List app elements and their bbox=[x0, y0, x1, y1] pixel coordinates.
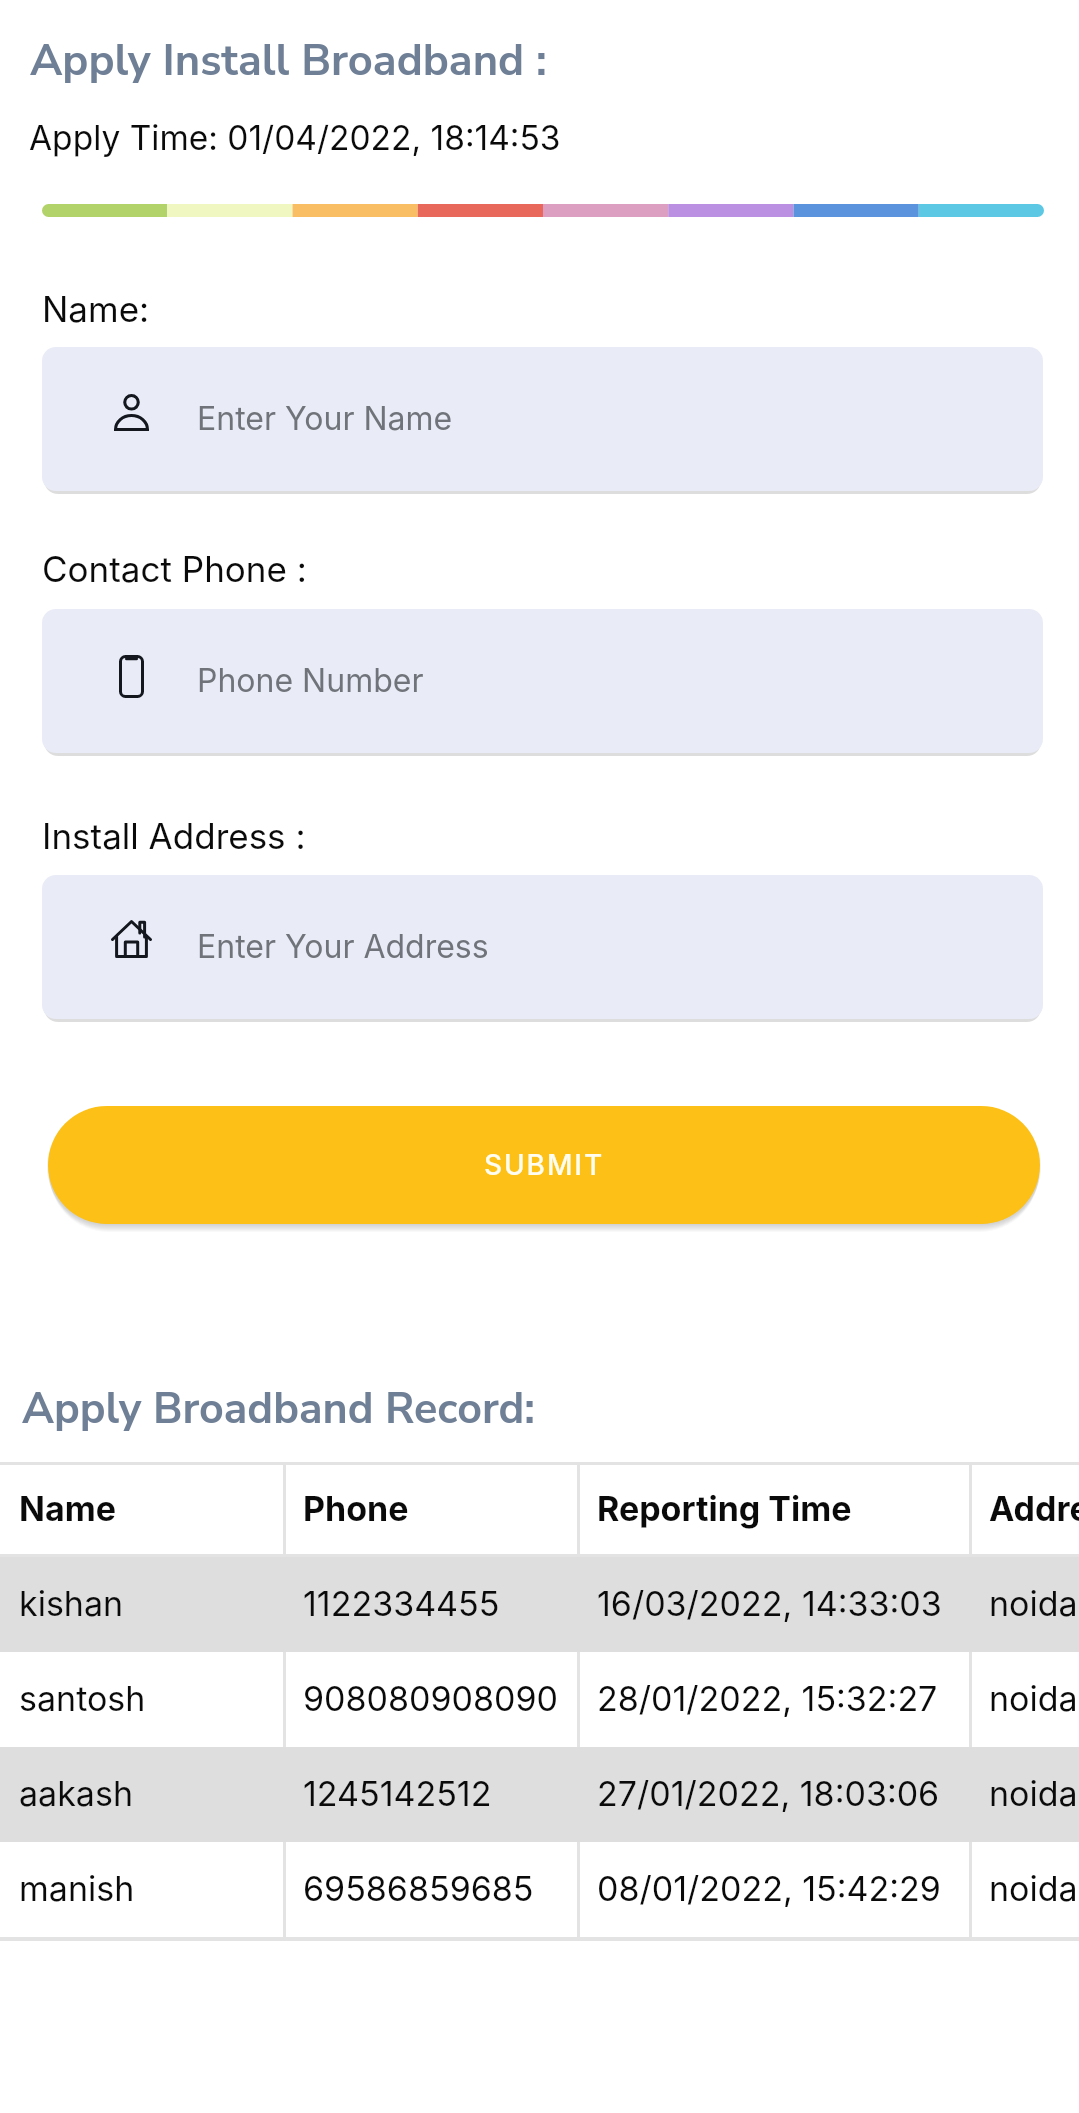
staticText: 1122334455 bbox=[303, 1583, 500, 1624]
staticText: Phone Number bbox=[197, 661, 424, 700]
button[interactable]: Name input field bbox=[42, 347, 1043, 491]
staticText: 27/01/2022, 18:03:06 bbox=[597, 1773, 940, 1814]
staticText: Name: bbox=[42, 288, 150, 330]
button[interactable]: SUBMIT bbox=[48, 1106, 1040, 1224]
staticText: Enter Your Name bbox=[197, 399, 453, 438]
staticText: aakash bbox=[19, 1773, 133, 1814]
staticText: 908080908090 bbox=[303, 1678, 559, 1719]
staticText: kishan bbox=[19, 1583, 124, 1624]
button[interactable]: Phone number input field bbox=[42, 609, 1043, 753]
staticText: noida bbox=[989, 1868, 1078, 1909]
staticText: Contact Phone : bbox=[42, 548, 307, 590]
staticText: Address bbox=[989, 1488, 1079, 1529]
staticText: noida bbox=[989, 1773, 1078, 1814]
staticText: santosh bbox=[19, 1678, 146, 1719]
staticText: 08/01/2022, 15:42:29 bbox=[597, 1868, 941, 1909]
staticText: 16/03/2022, 14:33:03 bbox=[597, 1583, 942, 1624]
staticText: SUBMIT bbox=[484, 1148, 605, 1182]
staticText: Reporting Time bbox=[597, 1488, 852, 1529]
staticText: manish bbox=[19, 1868, 135, 1909]
button[interactable] bbox=[0, 1747, 1079, 1842]
staticText: Phone bbox=[303, 1488, 409, 1529]
button[interactable] bbox=[0, 1842, 1079, 1937]
staticText: 69586859685 bbox=[303, 1868, 534, 1909]
staticText: 1245142512 bbox=[303, 1773, 492, 1814]
staticText: Apply Time: 01/04/2022, 18:14:53 bbox=[29, 118, 561, 159]
staticText: Apply Broadband Record: bbox=[22, 1380, 535, 1439]
staticText: Install Address : bbox=[42, 815, 306, 857]
staticText: 28/01/2022, 15:32:27 bbox=[597, 1678, 938, 1719]
button[interactable]: Address input field bbox=[42, 875, 1043, 1019]
staticText: noida bbox=[989, 1678, 1078, 1719]
button[interactable] bbox=[0, 1465, 1079, 1554]
staticText: Apply Install Broadband : bbox=[30, 31, 547, 90]
button[interactable] bbox=[0, 1652, 1079, 1747]
button[interactable] bbox=[0, 1557, 1079, 1652]
staticText: Enter Your Address bbox=[197, 927, 489, 966]
staticText: Name bbox=[19, 1488, 116, 1529]
staticText: noida bbox=[989, 1583, 1078, 1624]
